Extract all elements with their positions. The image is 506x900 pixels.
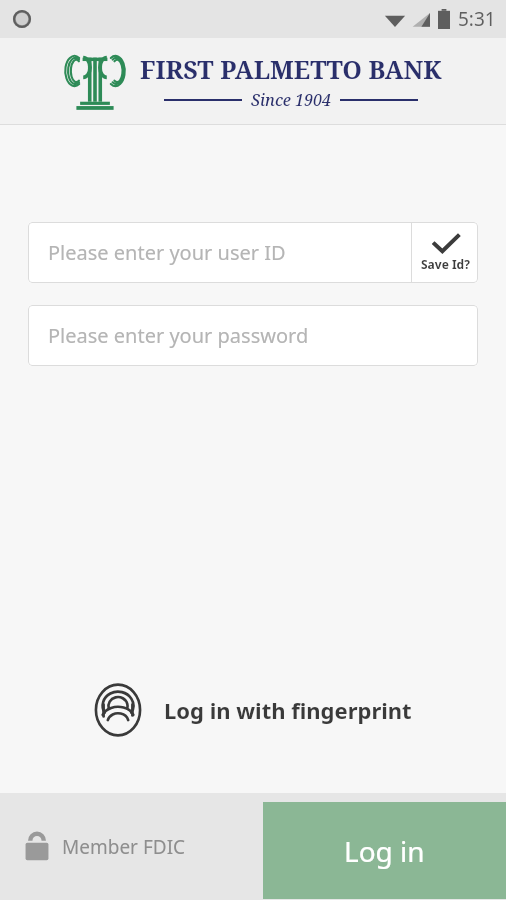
staticText: Please enter your password: [48, 322, 309, 349]
staticText: Log in: [344, 832, 425, 870]
button[interactable]: Please enter your password: [28, 305, 478, 366]
staticText: Save Id?: [421, 256, 470, 272]
staticText: Since 1904: [251, 89, 331, 111]
button[interactable]: Log in with fingerprint: [0, 675, 506, 745]
button[interactable]: Log in: [263, 802, 506, 899]
button[interactable]: Member FDIC: [24, 832, 186, 862]
staticText: 5:31: [458, 6, 496, 32]
staticText: Please enter your user ID: [48, 239, 286, 266]
button[interactable]: Please enter your user ID: [28, 222, 411, 283]
staticText: FIRST PALMETTO BANK: [140, 52, 442, 86]
staticText: Member FDIC: [62, 834, 186, 860]
staticText: Log in with fingerprint: [164, 695, 412, 725]
button[interactable]: Save Id?: [412, 222, 478, 283]
